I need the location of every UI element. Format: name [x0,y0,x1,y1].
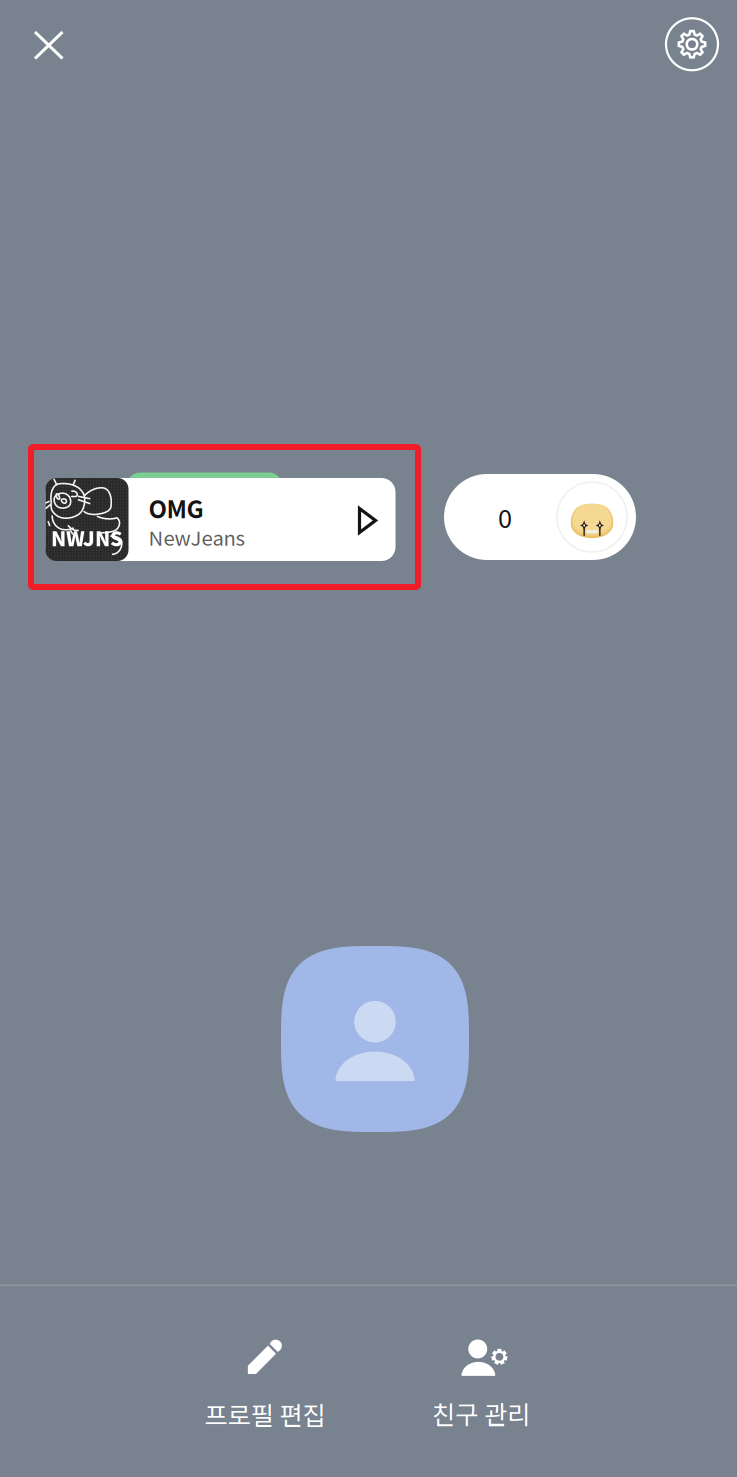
staticText: OMG [148,490,203,525]
button[interactable]: Settings [640,0,737,88]
button[interactable]: 친구 관리 [373,1340,589,1432]
staticText: 프로필 편집 [204,1395,325,1432]
button[interactable]: 0 [444,474,636,560]
staticText: NWJNS [51,523,123,552]
staticText: 친구 관리 [432,1395,530,1432]
staticText: NewJeans [148,522,244,551]
button[interactable]: Close [0,0,88,88]
staticText: 0 [498,499,512,535]
button[interactable]: 프로필 편집 [157,1339,373,1432]
